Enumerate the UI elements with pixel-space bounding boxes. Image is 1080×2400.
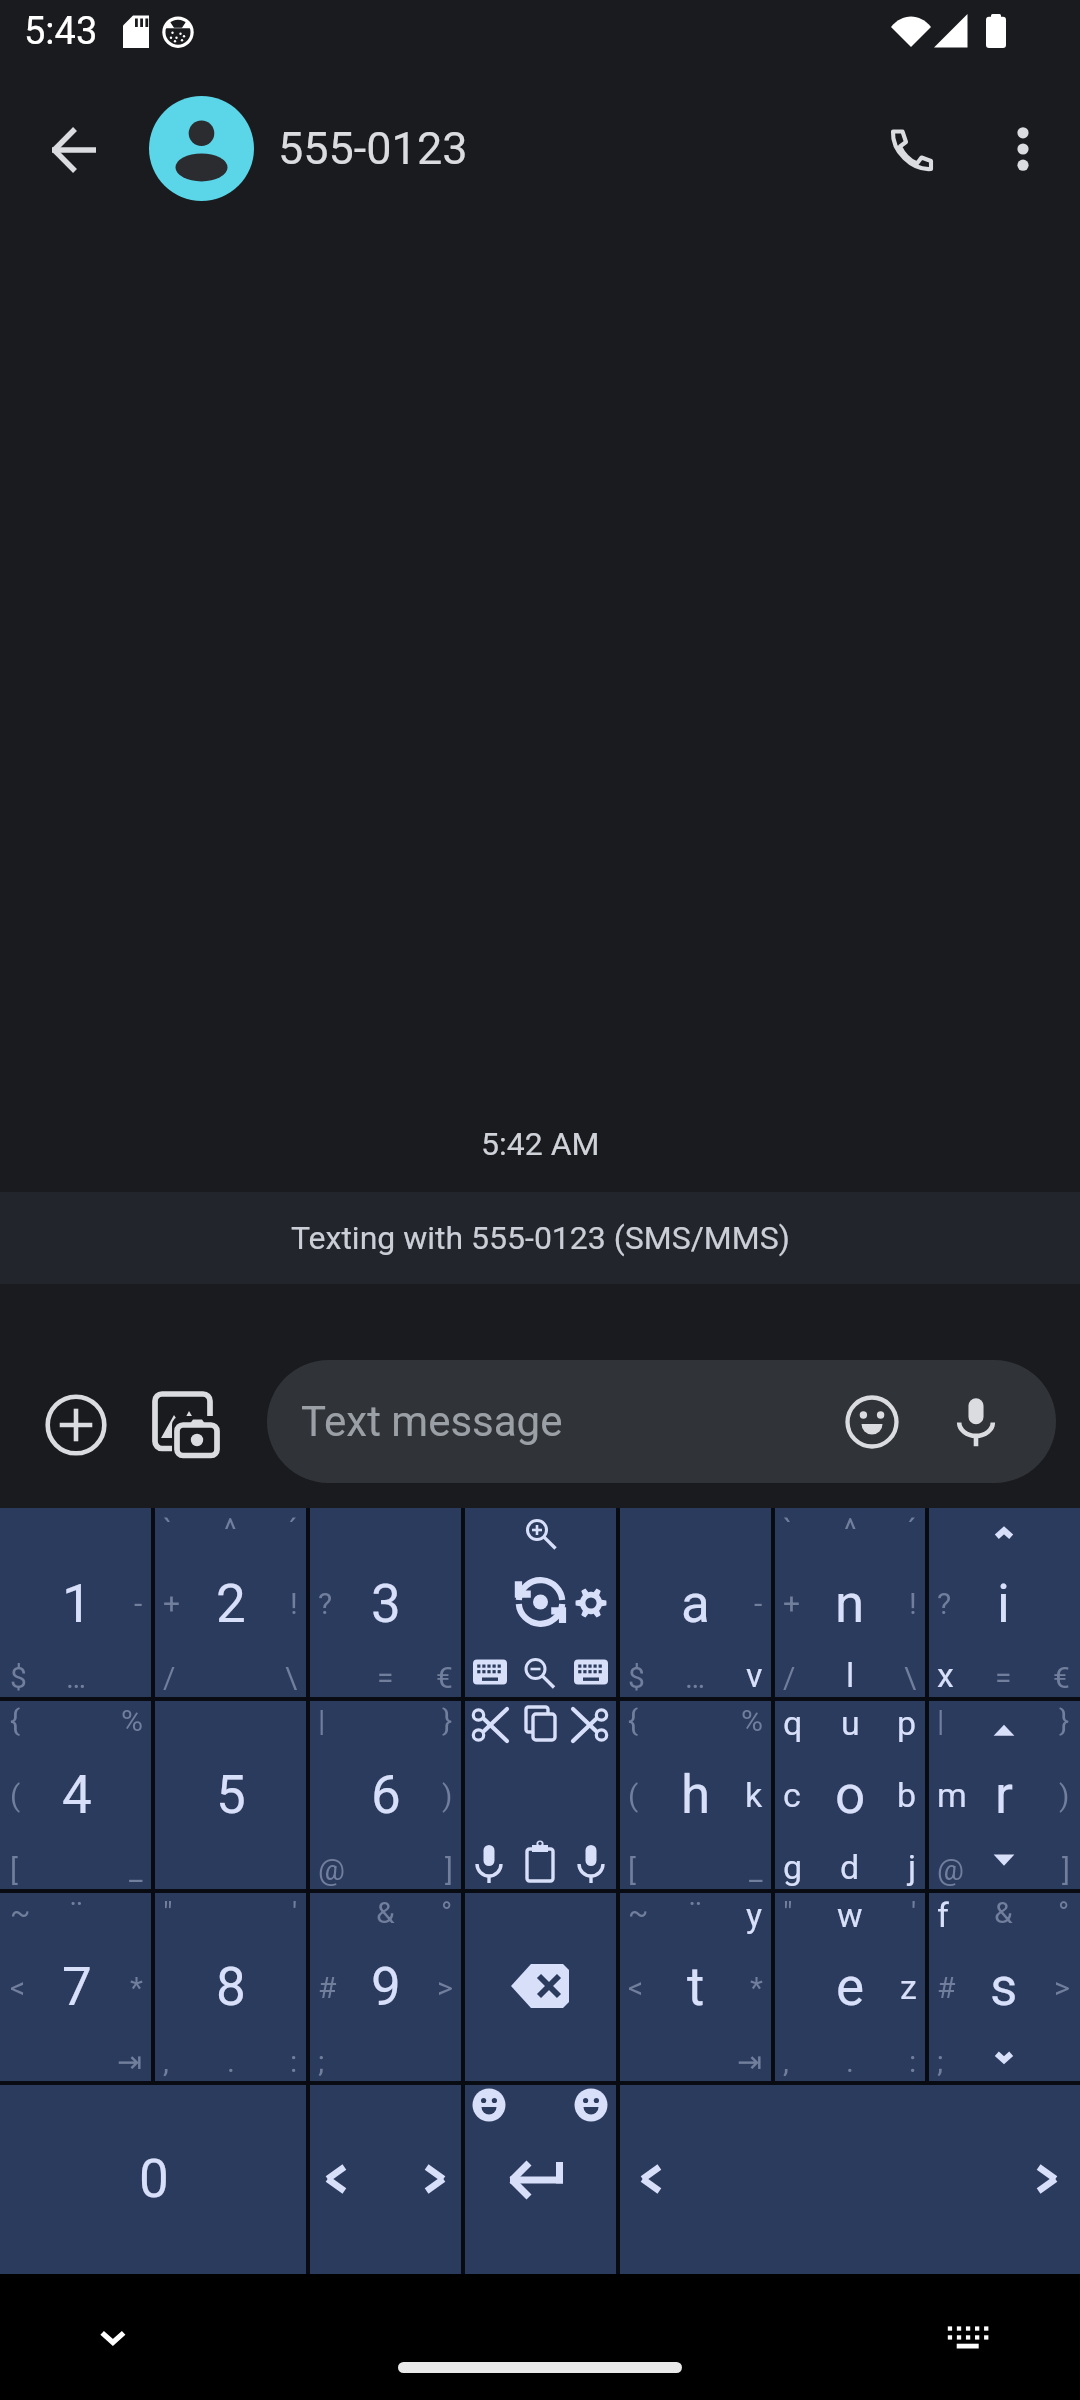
staticText: 555-0123 xyxy=(278,122,468,175)
button[interactable]: Send image xyxy=(140,1370,250,1480)
staticText: # xyxy=(318,1970,337,2005)
staticText: } xyxy=(442,1703,453,1738)
staticText: 9 xyxy=(371,1956,401,2018)
button[interactable]: Switch keyboard xyxy=(923,2293,1013,2383)
staticText: ; xyxy=(318,2044,325,2079)
staticText: k xyxy=(745,1775,763,1815)
staticText: = xyxy=(995,1660,1012,1695)
staticText: " xyxy=(783,1895,793,1930)
button[interactable]: Voice input xyxy=(934,1380,1018,1464)
staticText: … xyxy=(66,1660,87,1695)
button[interactable]: Enter xyxy=(463,2083,618,2274)
button[interactable]: a xyxy=(618,1508,773,1699)
staticText: … xyxy=(685,1660,706,1695)
staticText: @ xyxy=(318,1852,345,1887)
button[interactable]: e xyxy=(773,1891,927,2083)
staticText: ⇥ xyxy=(737,2044,763,2079)
staticText: n xyxy=(835,1573,865,1635)
staticText: x xyxy=(937,1655,954,1695)
staticText: ´ xyxy=(288,1512,298,1547)
button[interactable]: 0 xyxy=(0,2083,308,2274)
staticText: 5:43 xyxy=(24,9,98,54)
button[interactable]: Keyboard functions xyxy=(463,1508,618,1699)
button[interactable]: 2 xyxy=(153,1508,308,1699)
button[interactable]: i xyxy=(927,1508,1080,1699)
staticText: 0 xyxy=(139,2148,169,2210)
staticText: < xyxy=(628,1970,644,2005)
staticText: ` xyxy=(163,1512,173,1547)
staticText: $ xyxy=(628,1660,645,1695)
button[interactable]: o xyxy=(773,1699,927,1891)
staticText: ´ xyxy=(907,1512,917,1547)
button[interactable]: Keyboard functions xyxy=(463,1891,618,2083)
staticText: 8 xyxy=(216,1956,246,2018)
staticText: ! xyxy=(290,1586,298,1621)
button[interactable]: 4 xyxy=(0,1699,153,1891)
staticText: " xyxy=(163,1895,173,1930)
staticText: ⇥ xyxy=(117,2044,143,2079)
staticText: a xyxy=(681,1573,710,1635)
staticText: . xyxy=(227,2044,235,2079)
staticText: ! xyxy=(909,1586,917,1621)
button[interactable]: Hide keyboard xyxy=(68,2293,158,2383)
button[interactable]: 7 xyxy=(0,1891,153,2083)
staticText: > xyxy=(437,1970,453,2005)
staticText: # xyxy=(937,1970,956,2005)
staticText: Texting with 555-0123 (SMS/MMS) xyxy=(291,1219,790,1257)
button[interactable]: 6 xyxy=(308,1699,463,1891)
button[interactable]: Space xyxy=(618,2083,1080,2274)
staticText: i xyxy=(997,1573,1010,1635)
staticText: € xyxy=(436,1660,453,1695)
staticText: ~ xyxy=(10,1895,31,1930)
staticText: - xyxy=(754,1586,763,1621)
staticText: } xyxy=(1059,1703,1070,1738)
staticText: ' xyxy=(911,1895,917,1930)
staticText: [ xyxy=(628,1852,636,1887)
staticText: 7 xyxy=(62,1956,92,2018)
button[interactable]: Text message xyxy=(267,1360,1056,1483)
staticText: g xyxy=(783,1847,803,1887)
staticText: Text message xyxy=(301,1397,563,1446)
staticText: o xyxy=(835,1764,866,1826)
staticText: ( xyxy=(628,1778,639,1813)
staticText: | xyxy=(318,1703,326,1738)
staticText: b xyxy=(897,1775,917,1815)
staticText: - xyxy=(134,1586,143,1621)
button[interactable]: Back xyxy=(24,99,124,199)
staticText: * xyxy=(130,1970,143,2005)
staticText: ( xyxy=(10,1778,21,1813)
button[interactable]: More options xyxy=(973,99,1073,199)
button[interactable]: n xyxy=(773,1508,927,1699)
staticText: m xyxy=(937,1775,967,1815)
staticText: 3 xyxy=(371,1573,401,1635)
staticText: s xyxy=(990,1956,1018,2018)
staticText: . xyxy=(846,2044,854,2079)
staticText: t xyxy=(687,1956,705,2018)
staticText: , xyxy=(783,2044,789,2079)
button[interactable]: Add attachment xyxy=(21,1370,131,1480)
button[interactable]: s xyxy=(927,1891,1080,2083)
button[interactable]: Emoji xyxy=(830,1380,914,1464)
staticText: w xyxy=(837,1895,863,1935)
button[interactable]: Move cursor xyxy=(308,2083,463,2274)
staticText: ¨ xyxy=(70,1895,83,1930)
button[interactable]: h xyxy=(618,1699,773,1891)
staticText: h xyxy=(681,1764,711,1826)
button[interactable]: r xyxy=(927,1699,1080,1891)
button[interactable]: Call xyxy=(861,99,961,199)
button[interactable]: t xyxy=(618,1891,773,2083)
button[interactable]: 9 xyxy=(308,1891,463,2083)
staticText: u xyxy=(841,1703,860,1743)
staticText: q xyxy=(783,1703,803,1743)
button[interactable]: 3 xyxy=(308,1508,463,1699)
button[interactable]: Keyboard functions xyxy=(463,1699,618,1891)
staticText: + xyxy=(163,1586,181,1621)
button[interactable]: 1 xyxy=(0,1508,153,1699)
staticText: { xyxy=(10,1703,21,1738)
button[interactable]: 5 xyxy=(153,1699,308,1891)
staticText: ] xyxy=(445,1852,453,1887)
staticText: y xyxy=(746,1895,763,1935)
staticText: 6 xyxy=(371,1764,401,1826)
staticText: { xyxy=(628,1703,639,1738)
button[interactable]: 8 xyxy=(153,1891,308,2083)
